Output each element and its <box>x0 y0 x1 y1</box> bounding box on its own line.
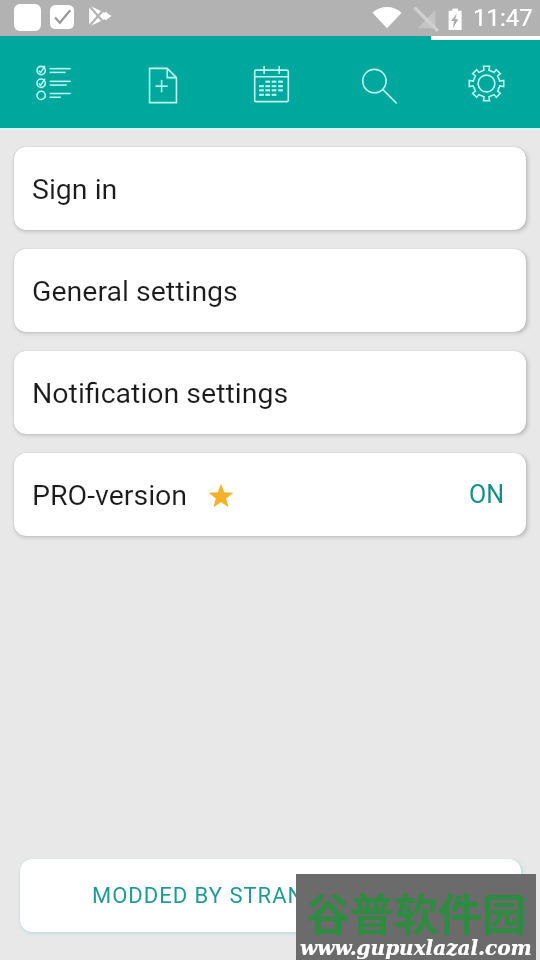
staticText: Notification settings <box>32 377 289 410</box>
button[interactable]: Search <box>324 36 432 130</box>
button[interactable]: Tasks <box>0 36 108 130</box>
button[interactable]: Notification settings <box>14 351 526 434</box>
staticText: 谷普软件园 <box>306 880 526 944</box>
button[interactable]: Sign in <box>14 147 526 230</box>
staticText: www.gupuxlazal.com <box>300 936 532 959</box>
staticText: MODDED BY STRANNIK PRO <box>92 883 395 909</box>
button[interactable]: Settings <box>432 36 540 130</box>
button[interactable]: PRO-version <box>14 453 526 536</box>
staticText: 11:47 <box>473 4 533 32</box>
staticText: Sign in <box>32 173 118 206</box>
staticText: PRO-version <box>32 479 188 512</box>
staticText: General settings <box>32 275 238 308</box>
button[interactable]: General settings <box>14 249 526 332</box>
staticText: ON <box>469 480 505 509</box>
button[interactable]: New document <box>108 36 216 130</box>
button[interactable]: MODDED BY STRANNIK PRO <box>20 859 521 932</box>
button[interactable]: Calendar <box>216 36 324 130</box>
